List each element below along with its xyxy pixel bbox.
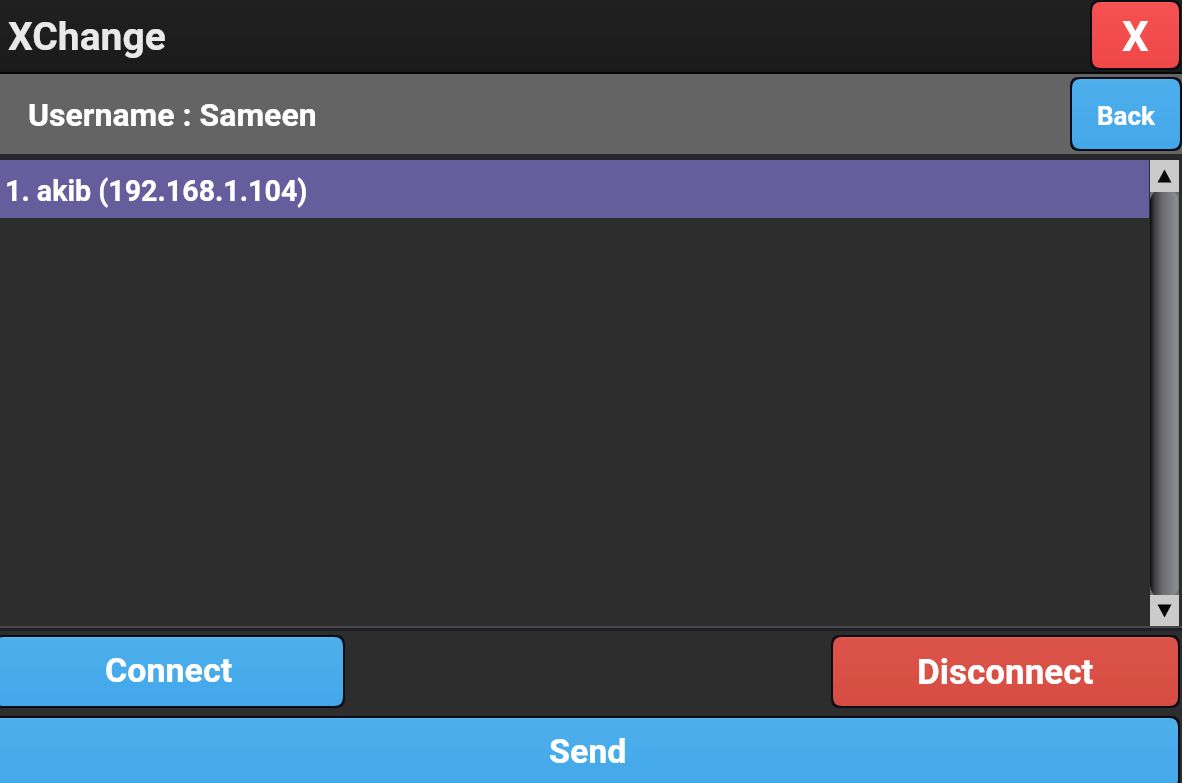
button[interactable]: Connect xyxy=(0,635,345,708)
button[interactable]: Disconnect xyxy=(831,635,1180,708)
staticText: Connect xyxy=(105,650,233,690)
staticText: Username : Sameen xyxy=(28,96,317,134)
staticText: X xyxy=(1122,12,1149,61)
button[interactable]: Back xyxy=(1070,77,1182,151)
button[interactable]: Send xyxy=(0,716,1180,783)
staticText: 1. akib (192.168.1.104) xyxy=(5,174,308,208)
staticText: Disconnect xyxy=(917,652,1094,693)
staticText: Back xyxy=(1097,101,1155,131)
staticText: Send xyxy=(549,731,627,771)
button[interactable]: Close xyxy=(1090,0,1181,70)
button[interactable]: 1. akib (192.168.1.104) xyxy=(0,160,1149,218)
button[interactable]: Scroll xyxy=(1150,160,1179,627)
staticText: XChange xyxy=(8,14,166,60)
